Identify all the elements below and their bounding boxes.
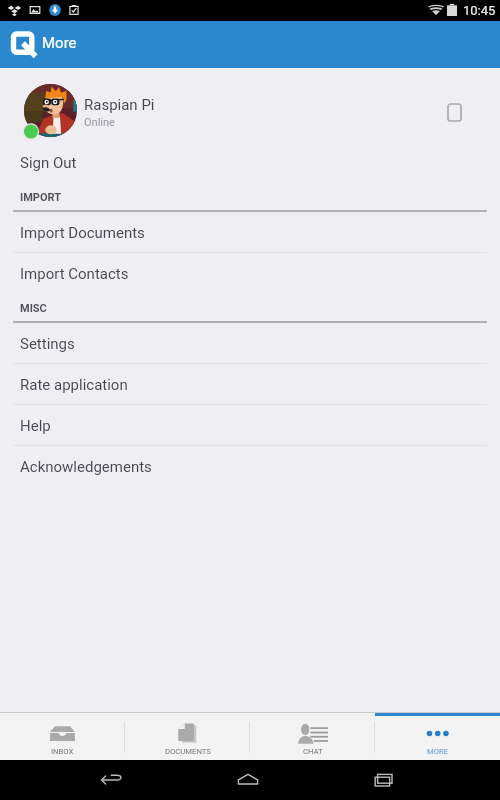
staticText: 10:45: [463, 3, 496, 18]
staticText: MORE: [427, 747, 449, 756]
button[interactable]: Import Contacts: [0, 253, 500, 294]
button[interactable]: Home: [228, 760, 272, 800]
staticText: Raspian Pi: [84, 96, 155, 114]
button[interactable]: Import Documents: [0, 212, 500, 253]
button[interactable]: Raspian Pi: [0, 68, 500, 142]
staticText: Rate application: [20, 376, 128, 394]
button[interactable]: DOCUMENTS: [125, 713, 250, 761]
staticText: Acknowledgements: [20, 458, 152, 476]
button[interactable]: Rate application: [0, 364, 500, 405]
button[interactable]: Back: [92, 760, 136, 800]
staticText: CHAT: [303, 747, 323, 756]
button[interactable]: INBOX: [0, 713, 125, 761]
button[interactable]: Edit profile: [448, 104, 461, 121]
button[interactable]: App logo: [10, 29, 42, 61]
staticText: Help: [20, 417, 51, 435]
button[interactable]: CHAT: [250, 713, 375, 761]
button[interactable]: Sign Out: [0, 142, 500, 183]
staticText: Import Documents: [20, 224, 145, 242]
button[interactable]: Acknowledgements: [0, 446, 500, 487]
staticText: DOCUMENTS: [165, 747, 211, 756]
staticText: Sign Out: [20, 154, 77, 172]
button[interactable]: Settings: [0, 323, 500, 364]
staticText: Import Contacts: [20, 265, 129, 283]
button[interactable]: MORE: [375, 713, 500, 761]
staticText: MISC: [20, 302, 47, 315]
button[interactable]: Recent apps: [364, 760, 408, 800]
staticText: INBOX: [51, 747, 74, 756]
staticText: More: [42, 34, 77, 52]
button[interactable]: Help: [0, 405, 500, 446]
staticText: Settings: [20, 335, 75, 353]
staticText: IMPORT: [20, 191, 62, 204]
staticText: Online: [84, 116, 115, 129]
